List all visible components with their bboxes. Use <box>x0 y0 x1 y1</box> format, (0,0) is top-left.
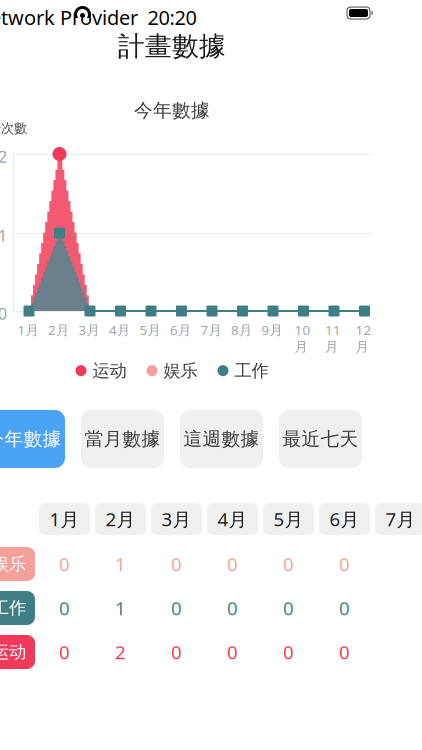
staticText: 运动 <box>0 641 26 663</box>
staticText: 0 <box>59 552 70 576</box>
staticText: 3月 <box>161 507 191 531</box>
staticText: 0 <box>227 552 238 576</box>
staticText: 0 <box>283 596 294 620</box>
button[interactable]: 這週數據 <box>180 410 263 468</box>
button[interactable]: 今年數據 <box>0 410 65 468</box>
staticText: 今年數據 <box>0 427 61 450</box>
staticText: 娱乐 <box>0 553 26 575</box>
staticText: 0 <box>171 596 182 620</box>
staticText: 0 <box>0 303 7 324</box>
staticText: 0 <box>339 596 350 620</box>
staticText: 0 <box>59 640 70 664</box>
staticText: 0 <box>171 552 182 576</box>
staticText: 計畫數據 <box>118 30 226 63</box>
staticText: 1月 <box>49 507 79 531</box>
staticText: 9月 <box>261 321 282 339</box>
staticText: 1月 <box>17 321 38 339</box>
staticText: 0 <box>283 640 294 664</box>
staticText: 1 <box>0 225 7 246</box>
staticText: Network Provider <box>0 4 138 31</box>
staticText: 今年數據 <box>134 99 210 122</box>
staticText: 6月 <box>329 507 359 531</box>
staticText: 0 <box>171 640 182 664</box>
staticText: 0 <box>339 640 350 664</box>
staticText: 8月 <box>231 321 252 339</box>
staticText: 12月 <box>355 321 371 355</box>
staticText: 2 <box>115 640 126 664</box>
staticText: 工作 <box>234 360 268 381</box>
staticText: 打卡次數 <box>0 120 27 136</box>
staticText: 娱乐 <box>163 360 197 381</box>
staticText: 0 <box>59 596 70 620</box>
staticText: 2月 <box>105 507 135 531</box>
staticText: 7月 <box>385 507 415 531</box>
staticText: 1 <box>115 552 126 576</box>
staticText: 10月 <box>294 321 310 355</box>
staticText: 3月 <box>78 321 99 339</box>
staticText: 5月 <box>139 321 160 339</box>
staticText: 7月 <box>200 321 221 339</box>
staticText: 5月 <box>273 507 303 531</box>
staticText: 11月 <box>325 321 341 355</box>
staticText: 20:20 <box>147 4 196 31</box>
button[interactable]: Back <box>0 24 13 64</box>
staticText: 最近七天 <box>282 427 358 450</box>
staticText: 1 <box>115 596 126 620</box>
staticText: 2 <box>0 146 7 167</box>
staticText: 运动 <box>92 360 126 381</box>
staticText: 0 <box>227 640 238 664</box>
staticText: 6月 <box>170 321 191 339</box>
staticText: 這週數據 <box>183 427 259 450</box>
staticText: 工作 <box>0 597 26 619</box>
staticText: 0 <box>339 552 350 576</box>
staticText: 0 <box>283 552 294 576</box>
staticText: 當月數據 <box>84 427 160 450</box>
button[interactable]: 最近七天 <box>279 410 362 468</box>
staticText: 0 <box>227 596 238 620</box>
staticText: 4月 <box>109 321 130 339</box>
button[interactable]: 當月數據 <box>81 410 164 468</box>
staticText: 2月 <box>48 321 69 339</box>
staticText: 4月 <box>217 507 247 531</box>
